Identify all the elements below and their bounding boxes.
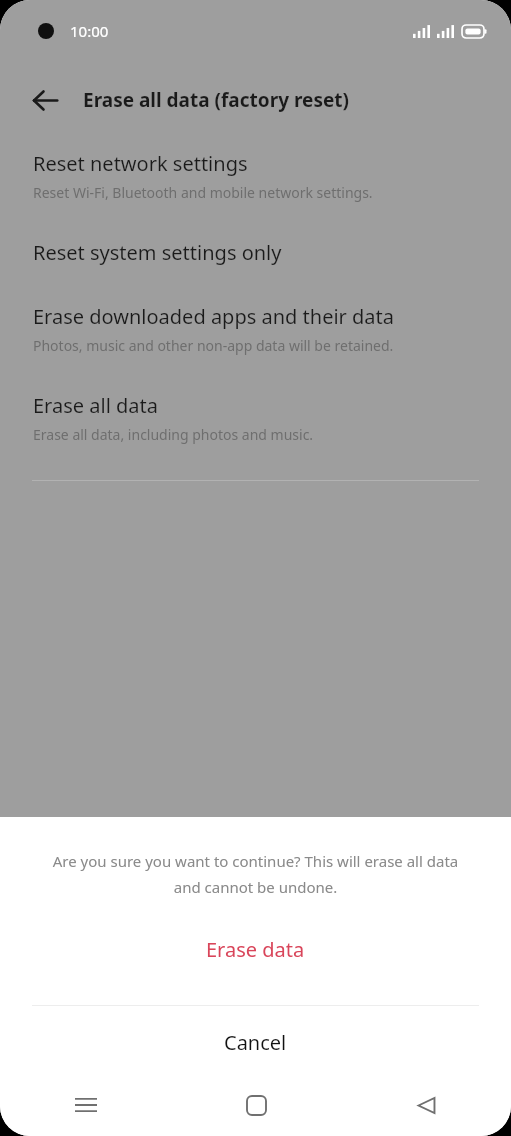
staticText: Photos, music and other non-app data wil… [33,336,394,355]
staticText: Reset system settings only [33,239,282,266]
staticText: 10:00 [70,21,109,41]
staticText: Erase data [206,936,305,963]
button[interactable]: Erase all data [0,392,511,444]
button[interactable]: Recent apps [0,1074,171,1136]
staticText: Reset network settings [33,150,248,177]
staticText: Erase all data (factory reset) [83,87,349,113]
staticText: Erase all data [33,392,158,419]
staticText: Reset Wi-Fi, Bluetooth and mobile networ… [33,183,373,202]
staticText: Cancel [224,1029,287,1056]
staticText: Are you sure you want to continue? This … [50,851,461,898]
button[interactable]: Home [171,1074,341,1136]
button[interactable]: Back [20,75,70,125]
staticText: Erase downloaded apps and their data [33,303,395,330]
button[interactable]: Erase data [0,923,511,975]
button[interactable]: Back [341,1074,511,1136]
staticText: Erase all data, including photos and mus… [33,425,314,444]
button[interactable]: Reset system settings only [0,239,511,266]
button[interactable]: Cancel [0,1006,511,1079]
button[interactable]: Erase downloaded apps and their data [0,303,511,355]
button[interactable]: Reset network settings [0,150,511,202]
